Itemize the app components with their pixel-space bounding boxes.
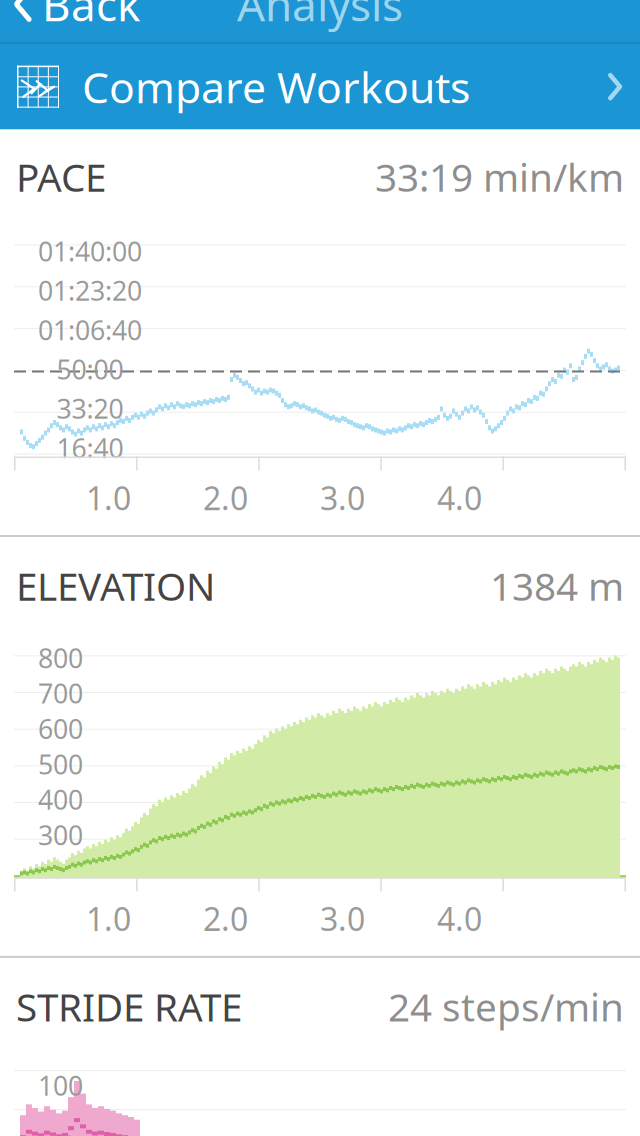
staticText: 2.0 xyxy=(203,476,248,519)
staticText: 16:40 xyxy=(56,430,123,465)
staticText: 24 steps/min xyxy=(388,981,624,1032)
button[interactable]: Back xyxy=(0,0,154,42)
staticText: 3.0 xyxy=(320,897,365,940)
staticText: 50:00 xyxy=(56,351,123,387)
staticText: Compare Workouts xyxy=(82,58,470,115)
staticText: 4.0 xyxy=(437,476,482,519)
staticText: 3.0 xyxy=(320,476,365,519)
staticText: 4.0 xyxy=(437,897,482,940)
staticText: Back xyxy=(42,0,140,33)
staticText: 01:06:40 xyxy=(38,312,142,347)
staticText: 1.0 xyxy=(86,476,131,519)
button[interactable]: Compare Workouts xyxy=(0,44,640,129)
staticText: 01:23:20 xyxy=(38,273,142,308)
staticText: 800 xyxy=(38,640,83,675)
staticText: PACE xyxy=(16,151,106,202)
staticText: 1.0 xyxy=(86,897,131,940)
staticText: Analysis xyxy=(237,0,403,33)
staticText: 700 xyxy=(38,675,83,711)
staticText: 01:40:00 xyxy=(38,233,142,269)
staticText: 400 xyxy=(38,782,83,817)
staticText: 1384 m xyxy=(490,560,624,611)
staticText: 500 xyxy=(38,746,83,782)
staticText: 33:20 xyxy=(56,391,123,426)
staticText: 2.0 xyxy=(203,897,248,940)
staticText: 33:19 min/km xyxy=(375,151,624,202)
staticText: 300 xyxy=(38,817,83,853)
staticText: ELEVATION xyxy=(16,560,215,611)
staticText: 80 xyxy=(45,1127,75,1136)
staticText: 600 xyxy=(38,711,83,746)
staticText: 100 xyxy=(38,1068,83,1103)
staticText: STRIDE RATE xyxy=(16,981,242,1032)
